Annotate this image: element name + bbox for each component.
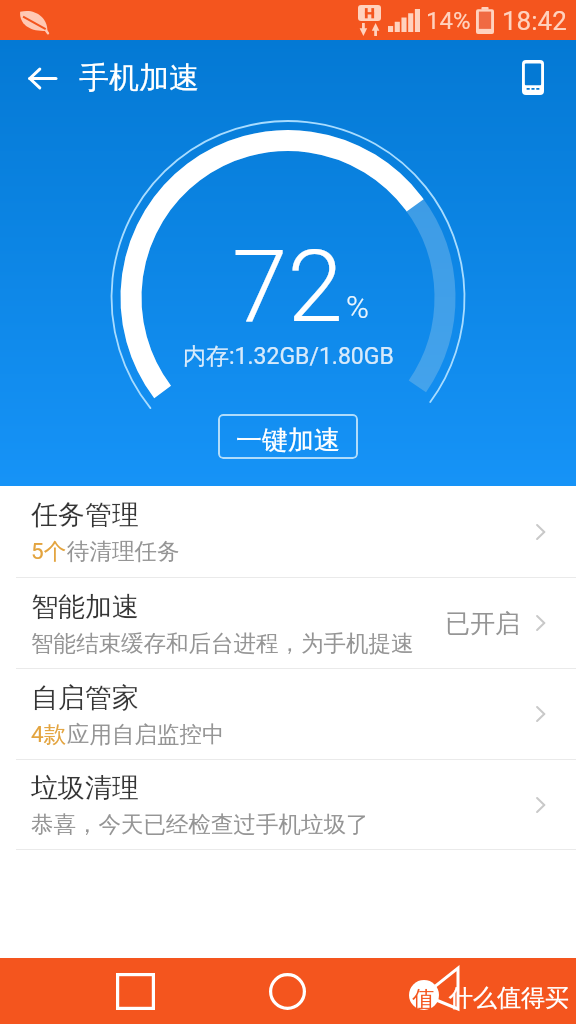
button[interactable]: Recent apps <box>103 958 168 1024</box>
button[interactable]: 一键加速 <box>218 414 358 459</box>
staticText: 手机加速 <box>79 59 199 97</box>
staticText: 待清理任务 <box>67 537 180 565</box>
staticText: 内存:1.32GB/1.80GB <box>183 342 394 371</box>
staticText: 5个 <box>31 537 67 565</box>
button[interactable]: Device <box>502 40 564 110</box>
staticText: 18:42 <box>502 6 567 36</box>
staticText: 什么值得买 <box>449 983 569 1013</box>
staticText: 智能加速 <box>31 590 139 624</box>
staticText: 值 <box>412 985 435 1014</box>
staticText: 一键加速 <box>236 424 340 457</box>
button[interactable]: 任务管理 <box>0 486 576 577</box>
button[interactable]: 自启管家 <box>0 669 576 759</box>
staticText: % <box>346 289 369 325</box>
staticText: 任务管理 <box>31 498 139 532</box>
button[interactable]: Home <box>255 958 320 1024</box>
staticText: 应用自启监控中 <box>67 720 225 748</box>
staticText: 72 <box>232 228 343 345</box>
staticText: 自启管家 <box>31 681 139 715</box>
staticText: 智能结束缓存和后台进程，为手机提速 <box>31 629 414 657</box>
staticText: 恭喜，今天已经检查过手机垃圾了 <box>31 810 369 838</box>
button[interactable]: 智能加速 <box>0 578 576 668</box>
staticText: 垃圾清理 <box>31 771 139 805</box>
staticText: 已开启 <box>445 608 520 639</box>
button[interactable]: 垃圾清理 <box>0 760 576 849</box>
staticText: 14% <box>426 7 471 35</box>
button[interactable]: Back <box>12 40 76 110</box>
staticText: 4款 <box>31 720 67 748</box>
